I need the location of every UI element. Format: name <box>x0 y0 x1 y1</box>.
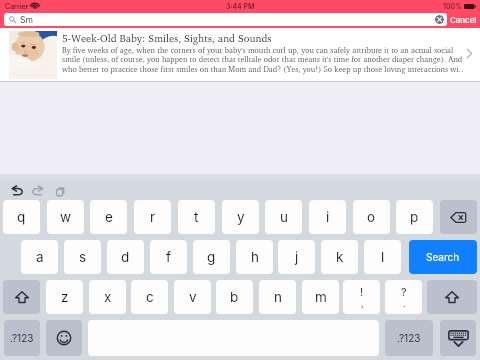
staticText: e <box>105 209 113 225</box>
button[interactable]: .?123 <box>385 320 433 356</box>
staticText: 3:44 PM <box>226 2 255 10</box>
staticText: 100% <box>443 2 462 10</box>
button[interactable]: m <box>302 280 339 314</box>
staticText: g <box>207 249 216 265</box>
button[interactable]: g <box>193 240 230 274</box>
button[interactable]: o <box>353 200 390 234</box>
staticText: .?123 <box>397 332 421 344</box>
staticText: t <box>194 209 199 225</box>
staticText: s <box>79 249 87 265</box>
button[interactable]: Backspace <box>440 200 477 234</box>
staticText: By five weeks of age, when the corners o… <box>62 45 463 74</box>
button[interactable]: r <box>134 200 171 234</box>
staticText: c <box>146 289 154 305</box>
staticText: .?123 <box>10 332 34 344</box>
button[interactable]: z <box>46 280 83 314</box>
staticText: a <box>36 249 44 265</box>
button[interactable]: .?123 <box>4 320 40 356</box>
staticText: ! <box>360 285 364 298</box>
staticText: k <box>336 249 344 265</box>
button[interactable]: Paste <box>51 182 69 200</box>
staticText: m <box>315 289 327 305</box>
button[interactable]: d <box>107 240 144 274</box>
staticText: r <box>150 209 156 225</box>
staticText: w <box>60 209 72 225</box>
button[interactable]: Clear text <box>435 15 444 24</box>
button[interactable]: t <box>178 200 215 234</box>
button[interactable]: q <box>3 200 40 234</box>
staticText: u <box>280 209 288 225</box>
button[interactable]: Emoji <box>46 320 82 356</box>
staticText: p <box>410 209 419 225</box>
staticText: ? <box>401 285 407 298</box>
staticText: Cancel <box>450 15 477 25</box>
staticText: y <box>237 209 245 225</box>
staticText: . <box>403 298 406 309</box>
staticText: b <box>230 289 239 305</box>
button[interactable]: ? <box>385 280 422 314</box>
button[interactable]: 5-Week-Old Baby: Smiles, Sights, and Sou… <box>0 28 480 81</box>
staticText: , <box>361 298 364 309</box>
staticText: d <box>121 249 130 265</box>
button[interactable]: j <box>278 240 315 274</box>
button[interactable]: Sm <box>4 13 447 26</box>
staticText: Carrier <box>5 2 29 10</box>
button[interactable]: Undo <box>8 182 26 200</box>
staticText: 5-Week-Old Baby: Smiles, Sights, and Sou… <box>62 32 272 45</box>
button[interactable]: Shift <box>3 280 40 314</box>
button[interactable]: u <box>265 200 302 234</box>
button[interactable]: Search <box>409 240 477 274</box>
staticText: v <box>189 289 197 305</box>
button[interactable]: e <box>90 200 127 234</box>
button[interactable]: Hide keyboard <box>440 320 476 356</box>
staticText: h <box>251 249 259 265</box>
button[interactable]: Shift <box>427 280 477 314</box>
button[interactable]: x <box>89 280 126 314</box>
button[interactable]: Redo <box>29 182 47 200</box>
button[interactable]: v <box>174 280 211 314</box>
button[interactable]: w <box>47 200 84 234</box>
staticText: l <box>381 249 385 265</box>
button[interactable]: Cancel <box>449 13 478 26</box>
staticText: q <box>17 209 26 225</box>
button[interactable]: ! <box>343 280 380 314</box>
button[interactable]: y <box>222 200 259 234</box>
button[interactable]: f <box>150 240 187 274</box>
button[interactable]: p <box>396 200 433 234</box>
button[interactable]: n <box>259 280 296 314</box>
staticText: n <box>274 289 282 305</box>
staticText: Search <box>426 251 460 263</box>
button[interactable]: c <box>131 280 168 314</box>
staticText: x <box>104 289 112 305</box>
button[interactable]: i <box>309 200 346 234</box>
button[interactable]: s <box>64 240 101 274</box>
staticText: i <box>326 209 330 225</box>
staticText: f <box>166 249 171 265</box>
staticText: j <box>295 249 299 265</box>
button[interactable]: l <box>364 240 401 274</box>
button[interactable]: a <box>21 240 58 274</box>
button[interactable]: h <box>236 240 273 274</box>
button[interactable]: k <box>321 240 358 274</box>
button[interactable]: b <box>216 280 253 314</box>
staticText: z <box>61 289 69 305</box>
staticText: Sm <box>20 15 33 25</box>
staticText: o <box>367 209 376 225</box>
